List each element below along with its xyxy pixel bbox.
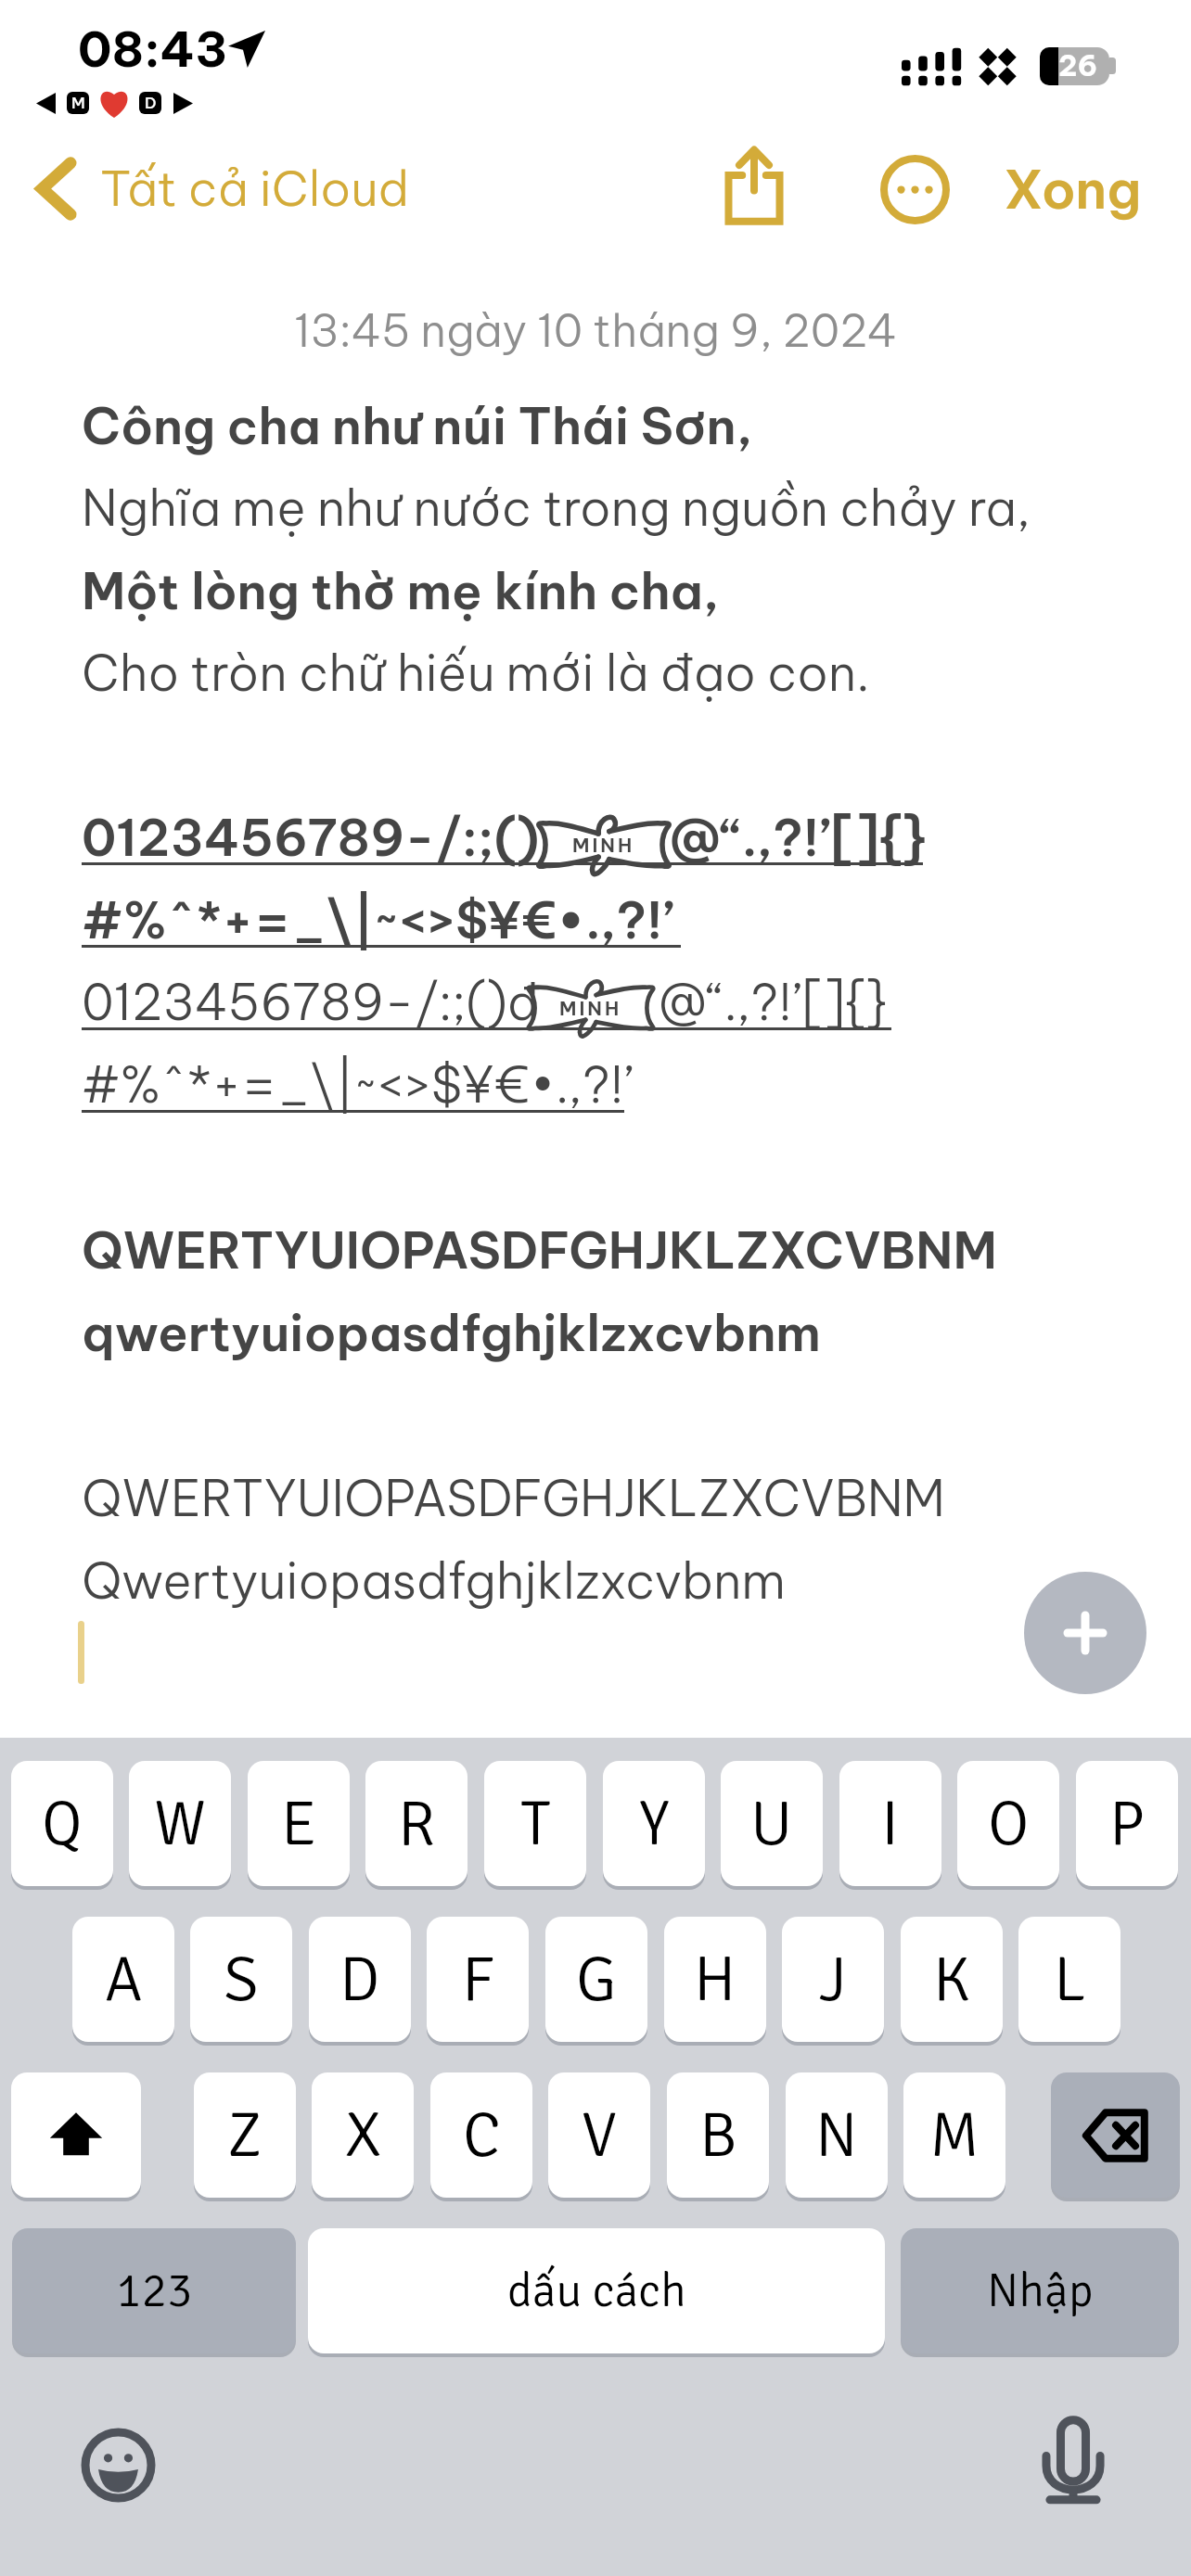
- staticText: V: [582, 2097, 617, 2174]
- button[interactable]: D: [309, 1917, 411, 2042]
- button[interactable]: Add attachment: [1024, 1572, 1146, 1694]
- button[interactable]: U: [721, 1761, 823, 1886]
- button[interactable]: M: [903, 2072, 1005, 2198]
- staticText: G: [576, 1941, 617, 2019]
- button[interactable]: R: [365, 1761, 467, 1886]
- button[interactable]: dấu cách: [308, 2228, 885, 2353]
- button[interactable]: Nhập: [901, 2228, 1179, 2353]
- staticText: L: [1054, 1941, 1086, 2019]
- staticText: QWERTYUIOPASDFGHJKLZXCVBNM: [82, 1467, 945, 1529]
- button[interactable]: Backspace: [1051, 2072, 1180, 2198]
- button[interactable]: V: [548, 2072, 650, 2198]
- staticText: Nghĩa mẹ như nước trong nguồn chảy ra,: [82, 477, 1031, 539]
- staticText: X: [345, 2097, 381, 2174]
- staticText: S: [224, 1941, 259, 2019]
- button[interactable]: Tất cả iCloud: [37, 137, 410, 239]
- button[interactable]: O: [957, 1761, 1059, 1886]
- staticText: @“.,?!’[]{}: [670, 806, 927, 869]
- staticText: 26: [1058, 47, 1098, 83]
- button[interactable]: 123: [12, 2228, 296, 2353]
- button[interactable]: J: [782, 1917, 884, 2042]
- button[interactable]: I: [839, 1761, 941, 1886]
- staticText: I: [881, 1785, 900, 1863]
- staticText: P: [1109, 1785, 1145, 1863]
- button[interactable]: L: [1018, 1917, 1121, 2042]
- button[interactable]: X: [312, 2072, 414, 2198]
- button[interactable]: W: [129, 1761, 231, 1886]
- button[interactable]: Z: [194, 2072, 296, 2198]
- staticText: H: [694, 1941, 736, 2019]
- staticText: 0123456789-/:;()đ: [82, 971, 540, 1033]
- staticText: #%^*+=_\|~<>$¥€•.,?!’: [82, 1053, 634, 1116]
- staticText: U: [750, 1785, 793, 1863]
- staticText: Tất cả iCloud: [100, 158, 410, 219]
- staticText: Qwertyuiopasdfghjklzxcvbnm: [82, 1549, 786, 1612]
- staticText: Cho tròn chữ hiếu mới là đạo con.: [82, 642, 870, 704]
- staticText: N: [815, 2097, 858, 2174]
- staticText: F: [462, 1941, 494, 2019]
- staticText: W: [154, 1785, 206, 1863]
- button[interactable]: More options: [864, 138, 966, 240]
- staticText: J: [819, 1941, 847, 2019]
- staticText: Một lòng thờ mẹ kính cha,: [82, 559, 720, 622]
- staticText: dấu cách: [507, 2262, 686, 2320]
- staticText: T: [520, 1785, 551, 1863]
- button[interactable]: N: [786, 2072, 888, 2198]
- staticText: M: [71, 93, 85, 113]
- button[interactable]: Q: [11, 1761, 113, 1886]
- button[interactable]: Share: [703, 134, 805, 236]
- staticText: Nhập: [987, 2262, 1094, 2320]
- staticText: K: [933, 1941, 970, 2019]
- staticText: R: [398, 1785, 436, 1863]
- staticText: MINH: [559, 996, 622, 1021]
- staticText: #%^*+=_\|~<>$¥€•.,?!’: [82, 888, 674, 951]
- button[interactable]: T: [484, 1761, 586, 1886]
- staticText: Q: [42, 1785, 83, 1863]
- staticText: MINH: [572, 833, 635, 858]
- button[interactable]: Xong: [1004, 138, 1142, 240]
- staticText: 0123456789-/:;(): [82, 806, 540, 869]
- button[interactable]: P: [1076, 1761, 1178, 1886]
- button[interactable]: Voice input: [1043, 2418, 1104, 2504]
- button[interactable]: G: [545, 1917, 647, 2042]
- button[interactable]: F: [427, 1917, 529, 2042]
- button[interactable]: Emoji: [81, 2428, 156, 2503]
- staticText: Xong: [1004, 156, 1142, 223]
- button[interactable]: Y: [603, 1761, 705, 1886]
- staticText: 13:45 ngày 10 tháng 9, 2024: [0, 302, 1191, 359]
- staticText: A: [105, 1941, 143, 2019]
- staticText: M: [929, 2097, 980, 2174]
- staticText: E: [281, 1785, 317, 1863]
- staticText: Công cha như núi Thái Sơn,: [82, 394, 753, 457]
- staticText: B: [699, 2097, 737, 2174]
- staticText: C: [463, 2097, 501, 2174]
- staticText: D: [339, 1941, 380, 2019]
- button[interactable]: E: [248, 1761, 350, 1886]
- staticText: Z: [227, 2097, 263, 2174]
- button[interactable]: S: [190, 1917, 292, 2042]
- button[interactable]: C: [430, 2072, 532, 2198]
- button[interactable]: B: [667, 2072, 769, 2198]
- staticText: 123: [116, 2262, 193, 2320]
- staticText: O: [988, 1785, 1030, 1863]
- button[interactable]: H: [664, 1917, 766, 2042]
- staticText: Y: [639, 1785, 670, 1863]
- staticText: 08:43: [78, 19, 228, 80]
- staticText: D: [145, 93, 157, 113]
- button[interactable]: K: [901, 1917, 1003, 2042]
- button[interactable]: Shift: [11, 2072, 141, 2198]
- staticText: QWERTYUIOPASDFGHJKLZXCVBNM: [82, 1218, 997, 1282]
- button[interactable]: A: [72, 1917, 174, 2042]
- staticText: qwertyuiopasdfghjklzxcvbnm: [82, 1301, 821, 1364]
- staticText: @“.,?!’[]{}: [659, 971, 887, 1033]
